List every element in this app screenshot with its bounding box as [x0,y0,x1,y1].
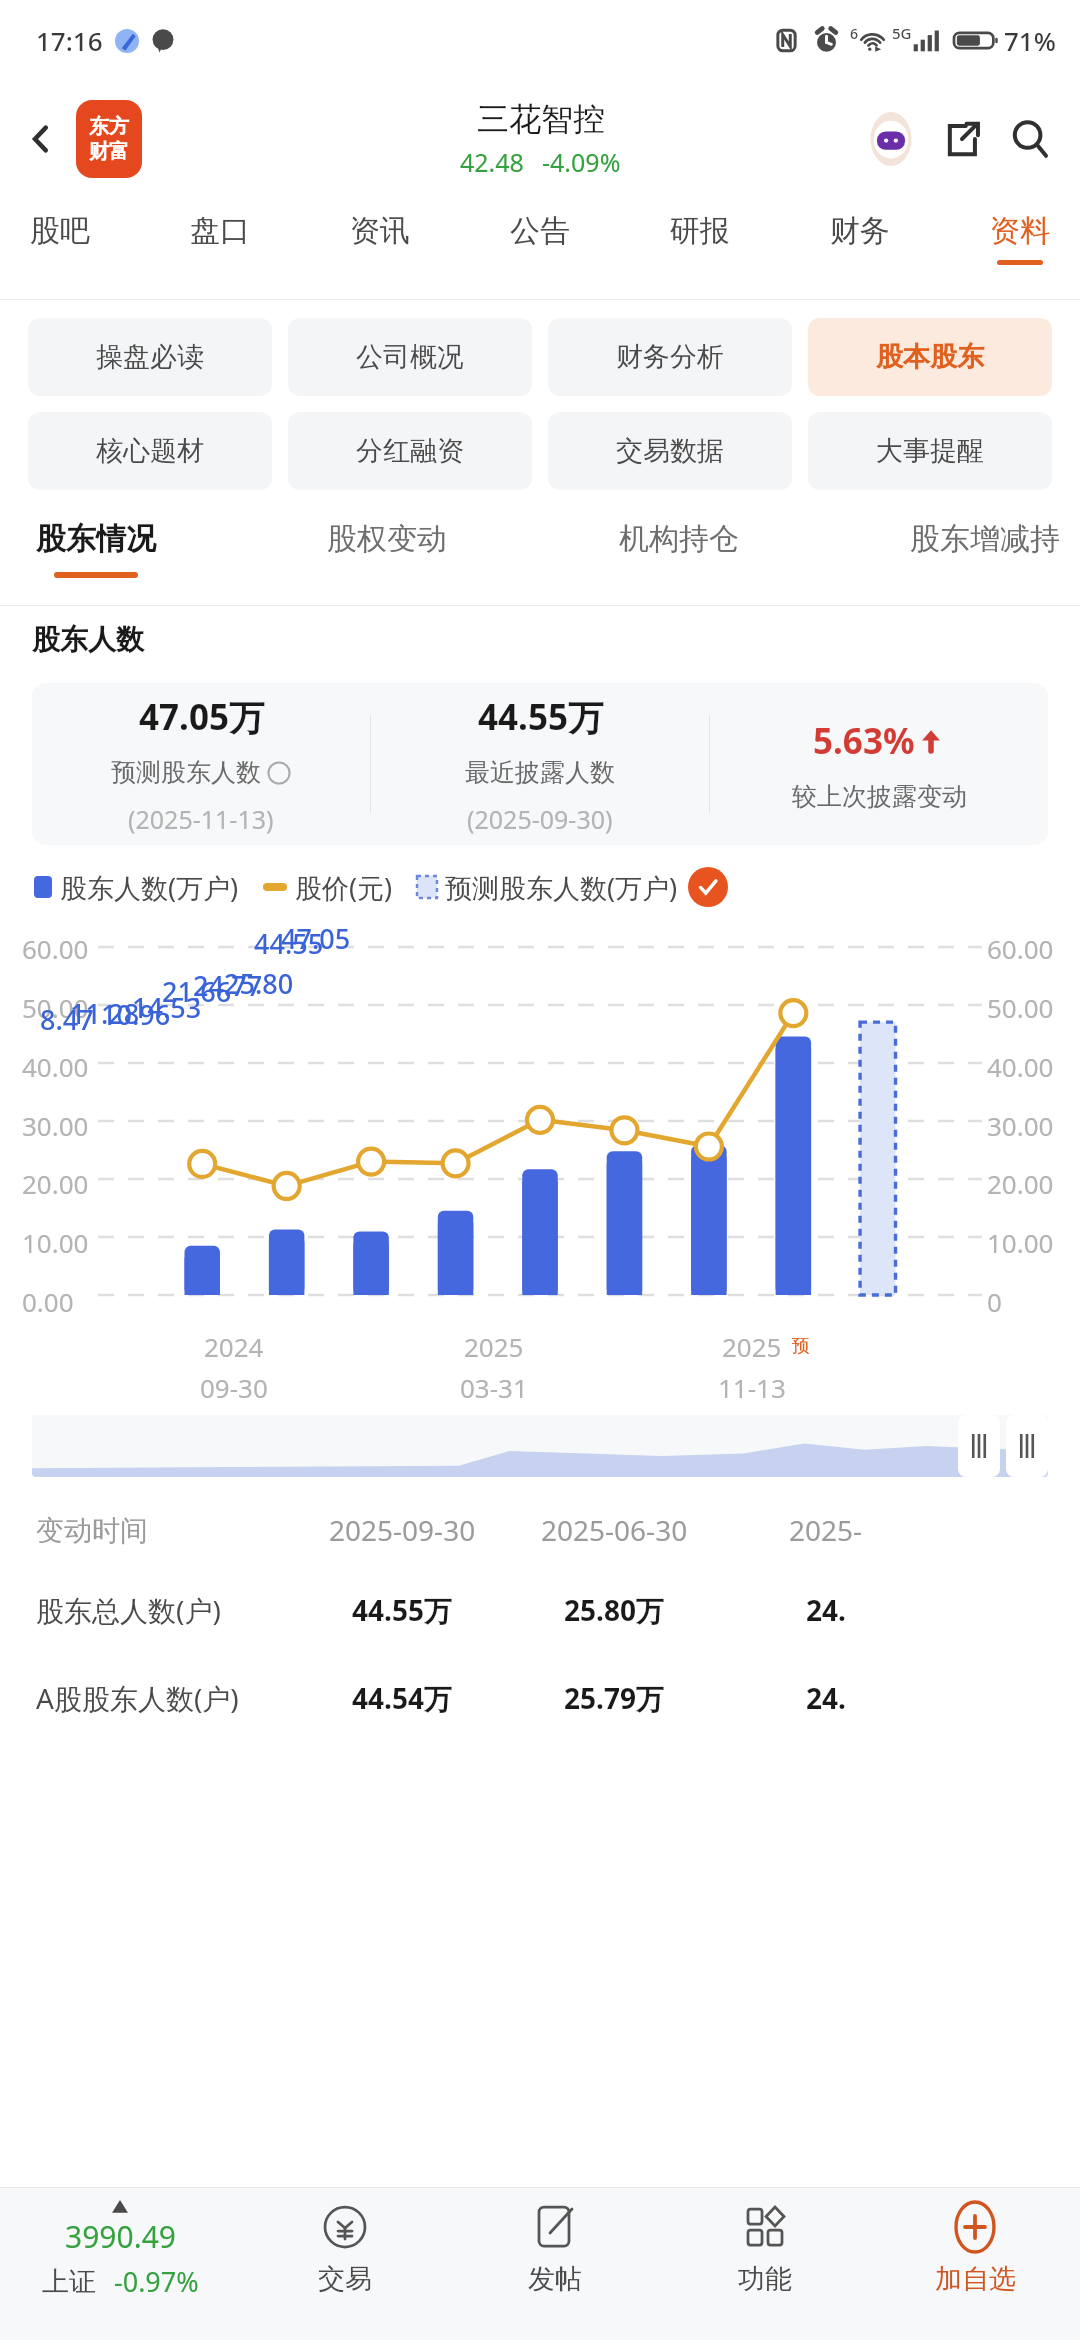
button[interactable]: 财务分析 [548,318,792,396]
button[interactable]: 返回 [12,110,70,168]
staticText: 2025 [464,1329,524,1364]
staticText: 6 [850,24,859,43]
staticText: 三花智控 [477,99,605,139]
staticText: 24.77 [193,967,263,1004]
staticText: 资讯 [350,212,410,250]
staticText: 11.28 [70,995,140,1032]
staticText: 公司概况 [356,340,464,374]
staticText: 47.05万 [139,693,264,741]
staticText: 分红融资 [356,434,464,468]
staticText: 2025 [722,1329,782,1364]
button[interactable]: 47.05万 [32,683,370,845]
staticText: 50.00 [22,990,89,1025]
button[interactable]: 左滑块 [958,1415,1000,1477]
button[interactable]: A股股东人数(户) [0,1679,1080,1717]
button[interactable]: 加自选 [870,2188,1080,2340]
staticText: 71% [1004,23,1056,58]
staticText: 2024 [204,1329,264,1364]
staticText: 09-30 [200,1370,268,1405]
staticText: 股权变动 [327,520,447,558]
button[interactable]: 盘口 [182,198,258,279]
staticText: 20.00 [987,1166,1054,1201]
staticText: 发帖 [528,2262,582,2296]
staticText: 2025-06-30 [541,1511,688,1549]
button[interactable]: 东方 [76,100,142,178]
button[interactable]: 资料 [982,198,1058,279]
staticText: 30.00 [22,1108,89,1143]
staticText: 预测股东人数(万户) [445,869,678,906]
staticText: 03-31 [460,1370,528,1405]
button[interactable]: 研报 [662,198,738,279]
staticText: 21.66 [162,973,232,1010]
staticText: 25.80 [224,965,294,1002]
staticText: 机构持仓 [619,520,739,558]
button[interactable]: 股东增减持 [910,508,1060,590]
staticText: 42.48 [460,145,524,179]
button[interactable]: 股权变动 [327,508,447,590]
staticText: A股股东人数(户) [36,1679,296,1717]
staticText: 股东增减持 [910,520,1060,558]
staticText: 财富 [89,139,129,164]
staticText: 财务分析 [616,340,724,374]
staticText: 24. [806,1591,846,1629]
staticText: 60.00 [22,931,89,966]
button[interactable]: 3990.49 [0,2188,240,2340]
button[interactable]: 44.55万 [371,683,709,845]
button[interactable]: 交易 [240,2188,450,2340]
staticText: 50.00 [987,990,1054,1025]
staticText: 股东总人数(户) [36,1591,296,1629]
staticText: -4.09% [542,145,621,179]
staticText: 股价(元) [295,869,393,906]
staticText: 60.00 [987,931,1054,966]
button[interactable]: 大事提醒 [808,412,1052,490]
staticText: 3990.49 [65,2216,176,2257]
button[interactable]: 确认 [688,867,728,907]
button[interactable]: 公告 [502,198,578,279]
button[interactable]: 分享 [932,109,992,169]
button[interactable]: 右滑块 [1006,1415,1048,1477]
staticText: 核心题材 [96,434,204,468]
staticText: 股东人数(万户) [60,869,239,906]
staticText: 2025- [789,1511,863,1549]
button[interactable]: 财务 [822,198,898,279]
button[interactable]: 股本股东 [808,318,1052,396]
staticText: 交易数据 [616,434,724,468]
staticText: 加自选 [935,2262,1016,2296]
button[interactable]: 公司概况 [288,318,532,396]
button[interactable]: 交易数据 [548,412,792,490]
staticText: 5.63% [813,717,915,765]
staticText: 东方 [89,114,129,139]
button[interactable]: 股吧 [22,198,98,279]
staticText: 功能 [738,2262,792,2296]
staticText: (2025-11-13) [128,802,274,836]
staticText: 预 [792,1335,810,1358]
staticText: 14.53 [132,989,202,1026]
staticText: 大事提醒 [876,434,984,468]
staticText: 44.54万 [352,1679,452,1717]
staticText: 最近披露人数 [465,757,615,788]
button[interactable]: 股东情况 [36,508,156,590]
button[interactable]: 发帖 [450,2188,660,2340]
staticText: 10.00 [22,1225,89,1260]
staticText: 44.55万 [478,693,603,741]
button[interactable]: 操盘必读 [28,318,272,396]
staticText: 8.47 [40,1001,94,1038]
staticText: 资料 [990,212,1050,250]
button[interactable]: 机构持仓 [619,508,739,590]
staticText: 股东情况 [36,520,156,558]
staticText: 25.80万 [564,1591,664,1629]
staticText: -0.97% [114,2263,199,2300]
button[interactable]: 核心题材 [28,412,272,490]
button[interactable]: 分红融资 [288,412,532,490]
staticText: 44.55万 [352,1591,452,1629]
button[interactable]: 5.63% [710,683,1048,845]
button[interactable]: 功能 [660,2188,870,2340]
staticText: 40.00 [22,1049,89,1084]
button[interactable]: AI助手 [860,108,922,170]
button[interactable]: 搜索 [1000,109,1060,169]
staticText: 盘口 [190,212,250,250]
button[interactable]: 资讯 [342,198,418,279]
staticText: 预测股东人数 [111,757,261,788]
button[interactable]: 变动时间 [0,1511,1080,1549]
button[interactable]: 股东总人数(户) [0,1591,1080,1629]
